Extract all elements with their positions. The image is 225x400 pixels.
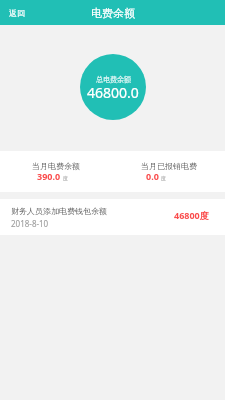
staticText: 46800度 [174,209,209,221]
staticText: 390.0 [37,170,61,182]
staticText: 返回 [9,8,25,18]
staticText: 总电费余额 [96,74,131,84]
staticText: 46800.0 [87,83,139,102]
staticText: 当月电费余额 [32,161,80,171]
staticText: 电费余额 [91,6,135,20]
staticText: 当月已报销电费 [141,161,197,171]
button[interactable]: 当月电费余额 [0,151,112,192]
staticText: 2018-8-10 [11,218,49,229]
staticText: 0.0 [146,170,159,182]
staticText: 度 [63,175,68,181]
button[interactable]: 财务人员添加电费钱包余额 [0,199,225,235]
staticText: 财务人员添加电费钱包余额 [11,206,107,216]
button[interactable]: 当月已报销电费 [112,151,225,192]
staticText: 度 [161,175,166,181]
button[interactable]: 返回 [0,0,34,25]
